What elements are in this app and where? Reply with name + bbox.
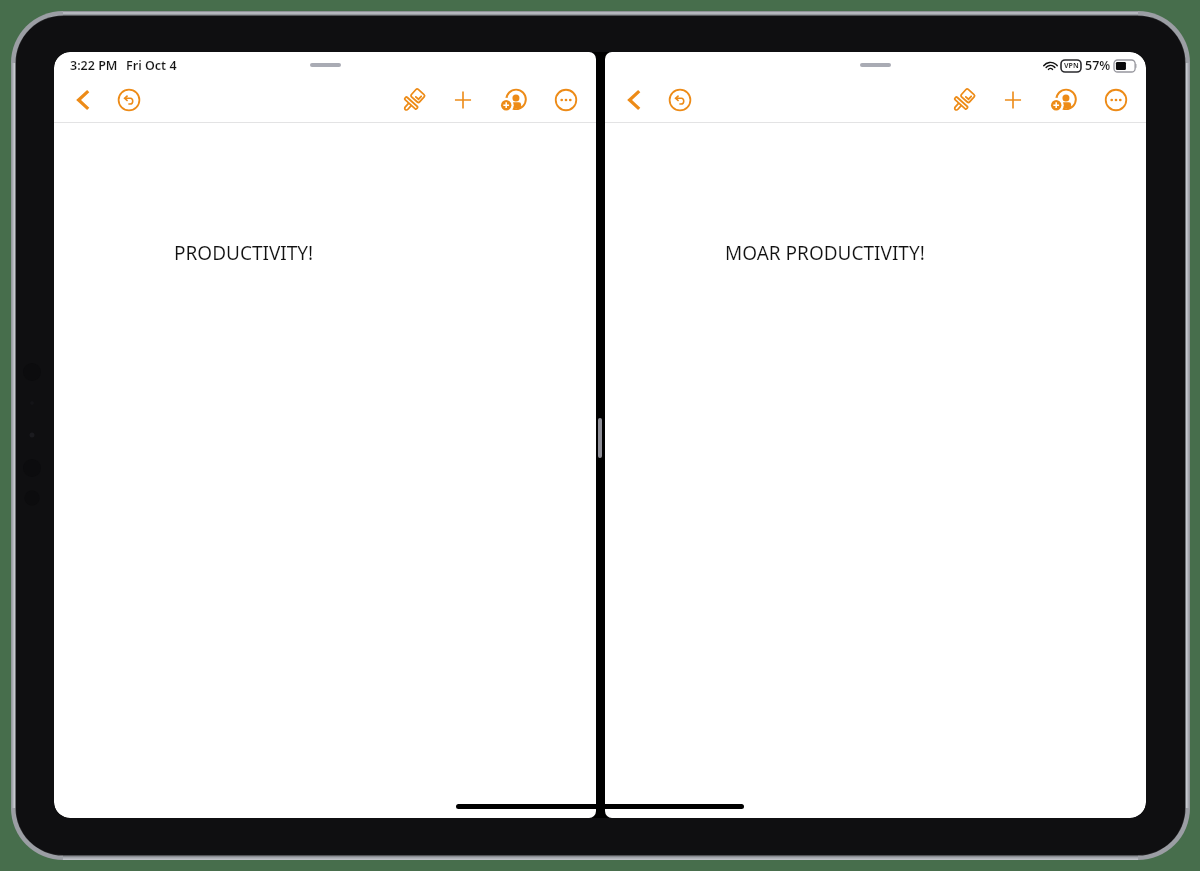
staticText: VPN	[1064, 61, 1079, 71]
button[interactable]: Back	[619, 85, 649, 115]
button[interactable]: Markup	[948, 85, 978, 115]
staticText: 57%	[1085, 57, 1111, 74]
button[interactable]: Markup	[398, 85, 428, 115]
button[interactable]: More options	[551, 85, 581, 115]
button[interactable]: Undo	[665, 85, 695, 115]
button[interactable]: Share with people	[499, 85, 529, 115]
button[interactable]: Share with people	[1049, 85, 1079, 115]
staticText: Fri Oct 4	[126, 57, 177, 74]
staticText: PRODUCTIVITY!	[174, 240, 314, 266]
button[interactable]: Add	[998, 85, 1028, 115]
button[interactable]: More options	[1101, 85, 1131, 115]
staticText: 3:22 PM	[70, 57, 118, 74]
button[interactable]: Undo	[114, 85, 144, 115]
button[interactable]: Back	[68, 85, 98, 115]
button[interactable]: Add	[448, 85, 478, 115]
staticText: MOAR PRODUCTIVITY!	[725, 240, 925, 266]
